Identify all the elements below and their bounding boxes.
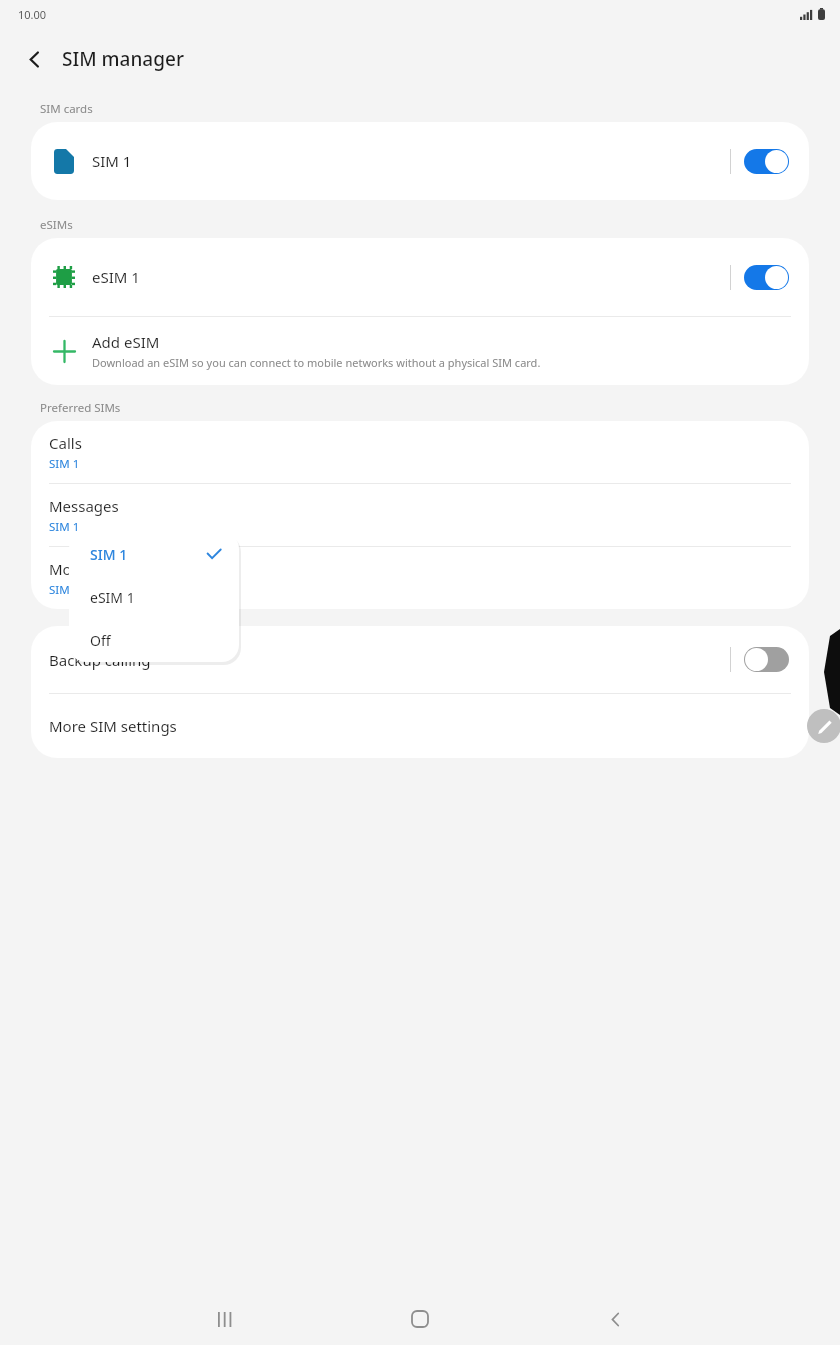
staticText: eSIMs bbox=[40, 217, 73, 233]
staticText: Preferred SIMs bbox=[40, 400, 121, 416]
staticText: Off bbox=[90, 631, 111, 650]
staticText: eSIM 1 bbox=[92, 267, 140, 287]
staticText: Add eSIM bbox=[92, 332, 160, 352]
staticText: SIM manager bbox=[62, 46, 184, 72]
staticText: 10.00 bbox=[18, 7, 47, 22]
staticText: eSIM 1 bbox=[90, 588, 135, 607]
staticText: SIM 1 bbox=[49, 456, 80, 472]
button[interactable]: Home bbox=[397, 1296, 443, 1342]
staticText: Download an eSIM so you can connect to m… bbox=[92, 355, 541, 370]
button[interactable]: Add eSIM bbox=[31, 317, 809, 385]
button[interactable]: SIM 1 bbox=[31, 122, 809, 200]
button[interactable]: Messages bbox=[31, 484, 809, 546]
staticText: Backup calling bbox=[49, 650, 151, 670]
staticText: SIM 1 bbox=[90, 545, 128, 564]
staticText: SIM 1 bbox=[49, 582, 80, 598]
staticText: SIM 1 bbox=[49, 519, 80, 535]
staticText: SIM cards bbox=[40, 101, 93, 117]
staticText: Mobile data bbox=[49, 559, 133, 579]
button[interactable]: Backup calling bbox=[31, 626, 809, 693]
button[interactable]: Off bbox=[69, 619, 239, 662]
button[interactable]: On bbox=[744, 265, 789, 290]
button[interactable]: eSIM 1 bbox=[31, 238, 809, 316]
staticText: SIM 1 bbox=[92, 151, 132, 171]
button[interactable]: Edit bbox=[807, 709, 840, 743]
button[interactable]: On bbox=[744, 149, 789, 174]
button[interactable]: eSIM 1 bbox=[69, 576, 239, 619]
button[interactable]: SIM 1 bbox=[69, 532, 239, 576]
staticText: Messages bbox=[49, 496, 119, 516]
button[interactable]: Recents bbox=[202, 1296, 248, 1342]
button[interactable]: Back bbox=[12, 37, 56, 81]
button[interactable]: Off bbox=[744, 647, 789, 672]
staticText: More SIM settings bbox=[49, 716, 177, 736]
staticText: Calls bbox=[49, 433, 82, 453]
button[interactable]: More SIM settings bbox=[31, 694, 809, 758]
button[interactable]: Calls bbox=[31, 421, 809, 483]
button[interactable]: Back bbox=[592, 1296, 638, 1342]
button[interactable]: Mobile data bbox=[31, 547, 809, 609]
